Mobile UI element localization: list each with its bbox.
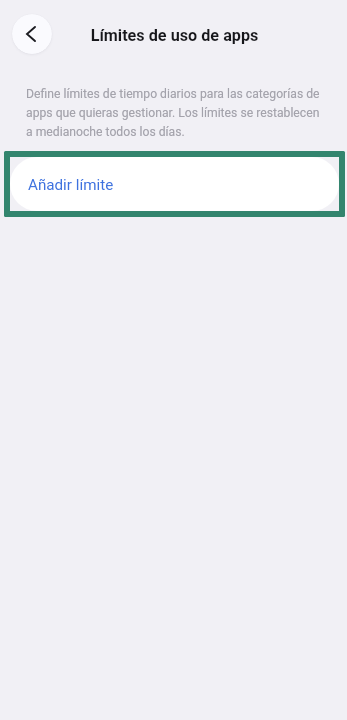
staticText: Define límites de tiempo diarios para la… bbox=[26, 87, 322, 139]
button[interactable]: Añadir límite bbox=[10, 157, 339, 211]
button[interactable]: Atrás bbox=[12, 14, 52, 54]
staticText: Límites de uso de apps bbox=[1, 26, 347, 45]
staticText: Añadir límite bbox=[28, 176, 114, 194]
